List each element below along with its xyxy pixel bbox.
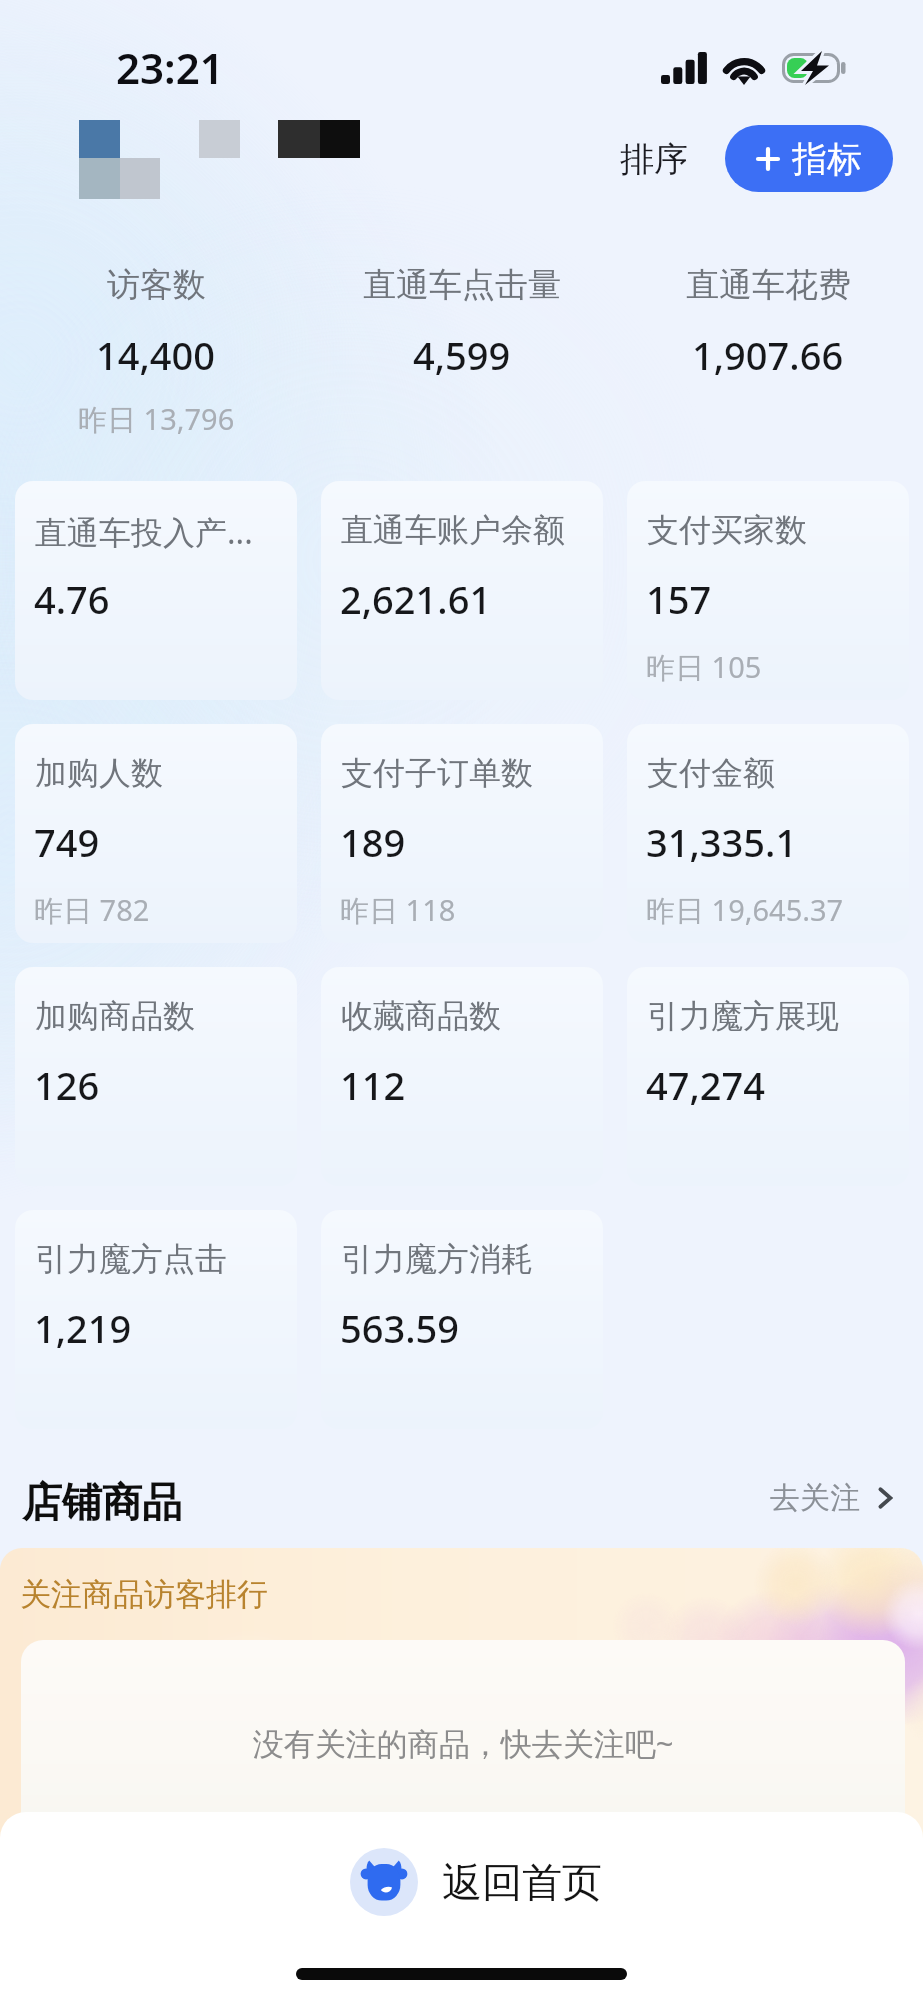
staticText: 563.59 <box>340 1302 460 1354</box>
staticText: 1,907.66 <box>692 329 844 381</box>
button[interactable]: 访客数 <box>15 264 297 439</box>
staticText: 引力魔方点击 <box>35 1239 227 1279</box>
button[interactable]: 加购人数 <box>15 724 297 943</box>
button[interactable]: 排序 <box>610 132 698 187</box>
button[interactable]: 加购商品数 <box>15 967 297 1186</box>
other: Battery charging <box>782 53 846 83</box>
staticText: 指标 <box>792 137 862 181</box>
other: Wi-Fi <box>722 52 766 83</box>
staticText: 引力魔方展现 <box>647 996 839 1036</box>
button[interactable]: 引力魔方点击 <box>15 1210 297 1429</box>
button[interactable]: 直通车点击量 <box>321 264 603 381</box>
staticText: 引力魔方消耗 <box>341 1239 533 1279</box>
staticText: 访客数 <box>107 264 206 306</box>
staticText: 189 <box>340 816 406 868</box>
staticText: 4,599 <box>413 329 511 381</box>
button[interactable]: 指标 <box>725 125 893 192</box>
staticText: 2,621.61 <box>340 573 492 625</box>
staticText: 23:21 <box>116 39 224 96</box>
staticText: 加购人数 <box>35 753 163 793</box>
button[interactable]: 引力魔方展现 <box>627 967 909 1186</box>
staticText: 店铺商品 <box>22 1477 182 1527</box>
staticText: 126 <box>34 1059 100 1111</box>
button[interactable]: 返回首页 <box>350 1812 602 1952</box>
button[interactable]: 去关注 <box>760 1474 910 1522</box>
staticText: 昨日 118 <box>340 890 456 930</box>
other: Cellular signal <box>661 52 709 84</box>
staticText: 直通车花费 <box>686 264 851 306</box>
staticText: 47,274 <box>646 1059 766 1111</box>
staticText: 31,335.1 <box>646 816 798 868</box>
staticText: 直通车账户余额 <box>341 510 565 550</box>
staticText: 关注商品访客排行 <box>20 1575 268 1614</box>
button[interactable]: 支付金额 <box>627 724 909 943</box>
staticText: 昨日 105 <box>646 647 762 687</box>
staticText: 支付买家数 <box>647 510 807 550</box>
staticText: 去关注 <box>770 1479 860 1517</box>
staticText: 加购商品数 <box>35 996 195 1036</box>
staticText: 直通车投入产... <box>35 510 253 554</box>
staticText: 直通车点击量 <box>363 264 561 306</box>
staticText: 112 <box>340 1059 406 1111</box>
staticText: 4.76 <box>34 573 110 625</box>
staticText: 1,219 <box>34 1302 132 1354</box>
staticText: 收藏商品数 <box>341 996 501 1036</box>
other: Shop logo <box>79 120 364 200</box>
staticText: 14,400 <box>96 329 216 381</box>
staticText: 昨日 19,645.37 <box>646 890 844 930</box>
staticText: 157 <box>646 573 712 625</box>
button[interactable]: 收藏商品数 <box>321 967 603 1186</box>
staticText: 没有关注的商品，快去关注吧~ <box>21 1722 905 1764</box>
button[interactable]: 直通车投入产... <box>15 481 297 700</box>
staticText: 749 <box>34 816 100 868</box>
staticText: 支付金额 <box>647 753 775 793</box>
staticText: 支付子订单数 <box>341 753 533 793</box>
staticText: 返回首页 <box>442 1857 602 1907</box>
staticText: 昨日 782 <box>34 890 150 930</box>
button[interactable]: 支付子订单数 <box>321 724 603 943</box>
staticText: 昨日 13,796 <box>78 399 235 439</box>
button[interactable]: 支付买家数 <box>627 481 909 700</box>
staticText: 排序 <box>620 138 688 181</box>
button[interactable]: 引力魔方消耗 <box>321 1210 603 1429</box>
button[interactable]: 直通车花费 <box>627 264 909 381</box>
button[interactable]: 直通车账户余额 <box>321 481 603 700</box>
